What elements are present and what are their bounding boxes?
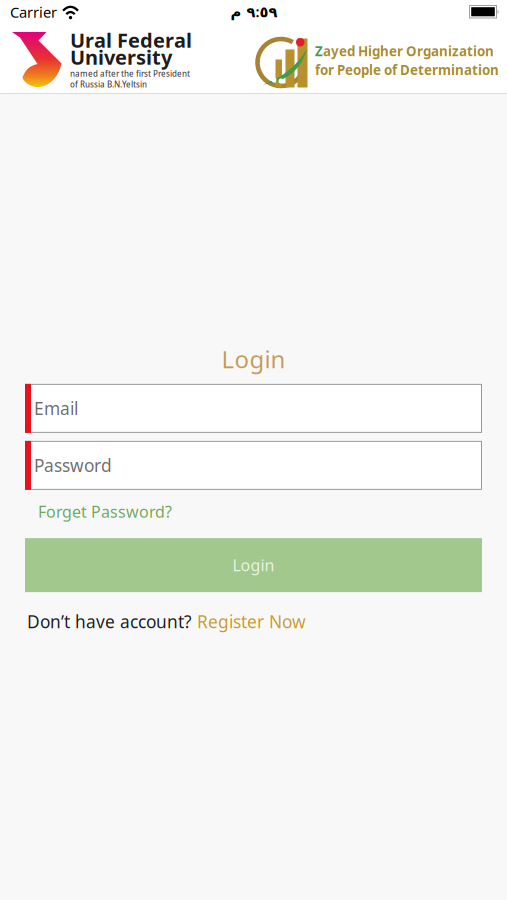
staticText: Forget Password? [38, 501, 172, 522]
button[interactable]: Login [25, 538, 482, 592]
staticText: Z [315, 42, 323, 60]
staticText: ٩:٥٩ م [230, 2, 277, 21]
staticText: named after the first President [70, 68, 190, 79]
staticText: Don’t have account? [27, 610, 197, 633]
staticText: Login [232, 554, 274, 576]
staticText: Register Now [197, 610, 306, 633]
staticText: of Russia B.N.Yeltsin [70, 79, 147, 90]
button[interactable]: Register Now [197, 610, 306, 633]
staticText: Password [34, 454, 112, 477]
button[interactable]: Password [25, 441, 482, 490]
staticText: University [70, 44, 172, 70]
staticText: for People of Determination [315, 61, 499, 79]
staticText: Email [34, 397, 78, 420]
staticText: Login [221, 343, 285, 375]
button[interactable]: Email [25, 384, 482, 433]
button[interactable]: Forget Password? [38, 501, 172, 522]
staticText: Ural Federal [70, 27, 192, 53]
staticText: Carrier [10, 2, 57, 22]
staticText: ayed Higher Organization [323, 42, 494, 60]
